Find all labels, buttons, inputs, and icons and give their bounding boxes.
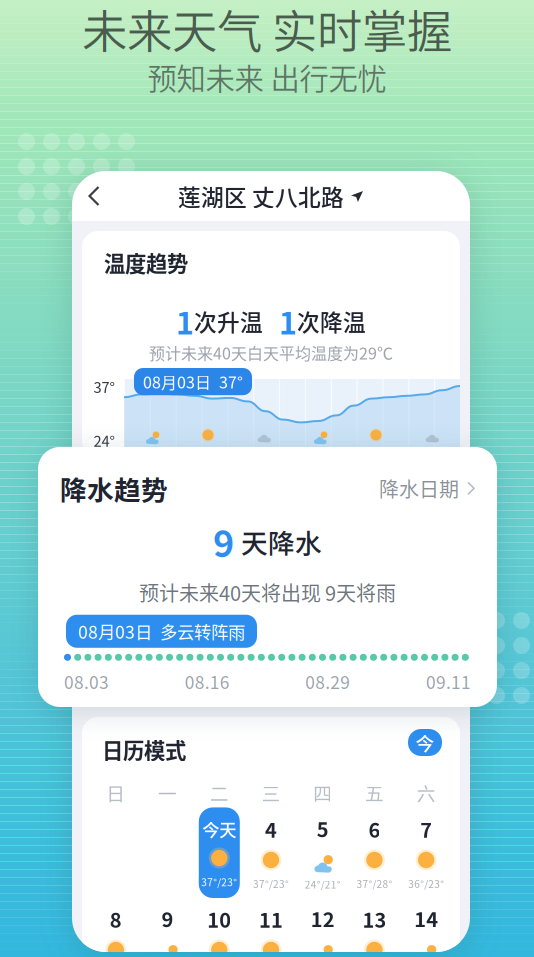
button[interactable]: 14 xyxy=(406,895,447,957)
button[interactable]: 6 xyxy=(354,805,395,900)
staticText: 预知未来 出行无忧 xyxy=(147,56,386,98)
staticText: 日历模式 xyxy=(102,734,186,765)
staticText: 1 xyxy=(176,299,194,343)
button[interactable]: 今 xyxy=(408,729,442,756)
staticText: 08月03日 多云转阵雨 xyxy=(78,619,245,644)
button[interactable]: 4 xyxy=(250,805,291,900)
staticText: 四 xyxy=(313,779,332,806)
staticText: 9 xyxy=(213,516,234,568)
staticText: 24° xyxy=(93,430,114,451)
staticText: 五 xyxy=(365,779,384,806)
staticText: 次升温 xyxy=(194,305,263,338)
button[interactable]: 13 xyxy=(354,895,395,957)
staticText: 1 xyxy=(279,299,297,343)
staticText: 二 xyxy=(210,779,229,806)
staticText: 7 xyxy=(420,814,432,843)
button[interactable]: 10 xyxy=(199,895,240,957)
button[interactable]: 今天 xyxy=(199,807,240,898)
button[interactable]: Back xyxy=(72,174,116,218)
staticText: 37°/23° xyxy=(201,874,237,889)
staticText: 37°/23° xyxy=(253,876,289,891)
staticText: 08.29 xyxy=(305,669,350,694)
staticText: 08月03日 37° xyxy=(143,370,243,393)
button[interactable]: 5 xyxy=(302,805,343,900)
staticText: 今天 xyxy=(202,816,236,841)
staticText: 08.03 xyxy=(64,669,109,694)
button[interactable]: 11 xyxy=(250,895,291,957)
staticText: 11 xyxy=(259,904,283,933)
staticText: 13 xyxy=(362,904,386,933)
staticText: 未来天气 实时掌握 xyxy=(82,0,452,62)
staticText: 24°/21° xyxy=(305,877,341,891)
staticText: 36°/23° xyxy=(408,876,444,891)
staticText: 37°/28° xyxy=(356,876,392,891)
staticText: 日 xyxy=(106,779,125,806)
staticText: 温度趋势 xyxy=(104,247,188,278)
staticText: 9 xyxy=(162,904,174,933)
button[interactable]: 降水日期 xyxy=(379,474,477,503)
staticText: 莲湖区 丈八北路 xyxy=(178,180,344,212)
button[interactable]: 8 xyxy=(95,895,136,957)
staticText: 预计未来40天将出现 9天将雨 xyxy=(139,578,396,607)
staticText: 14 xyxy=(414,904,438,933)
staticText: 今 xyxy=(415,729,434,756)
staticText: 降水日期 xyxy=(379,474,459,503)
staticText: 12 xyxy=(311,904,335,933)
staticText: 六 xyxy=(417,779,436,806)
staticText: 09.11 xyxy=(426,669,471,694)
staticText: 37° xyxy=(93,376,114,397)
staticText: 降水趋势 xyxy=(60,469,168,508)
staticText: 天降水 xyxy=(241,522,322,561)
staticText: 4 xyxy=(265,814,277,843)
staticText: 08.16 xyxy=(185,669,230,694)
staticText: 一 xyxy=(158,779,177,806)
staticText: 8 xyxy=(110,904,122,933)
staticText: 次降温 xyxy=(297,305,366,338)
staticText: 5 xyxy=(317,814,329,843)
staticText: 三 xyxy=(261,779,280,806)
button[interactable]: 7 xyxy=(406,805,447,900)
button[interactable]: 9 xyxy=(147,895,188,957)
button[interactable]: 12 xyxy=(302,895,343,957)
staticText: 预计未来40天白天平均温度为29℃ xyxy=(149,341,393,364)
staticText: 10 xyxy=(207,904,231,933)
staticText: 6 xyxy=(368,814,380,843)
